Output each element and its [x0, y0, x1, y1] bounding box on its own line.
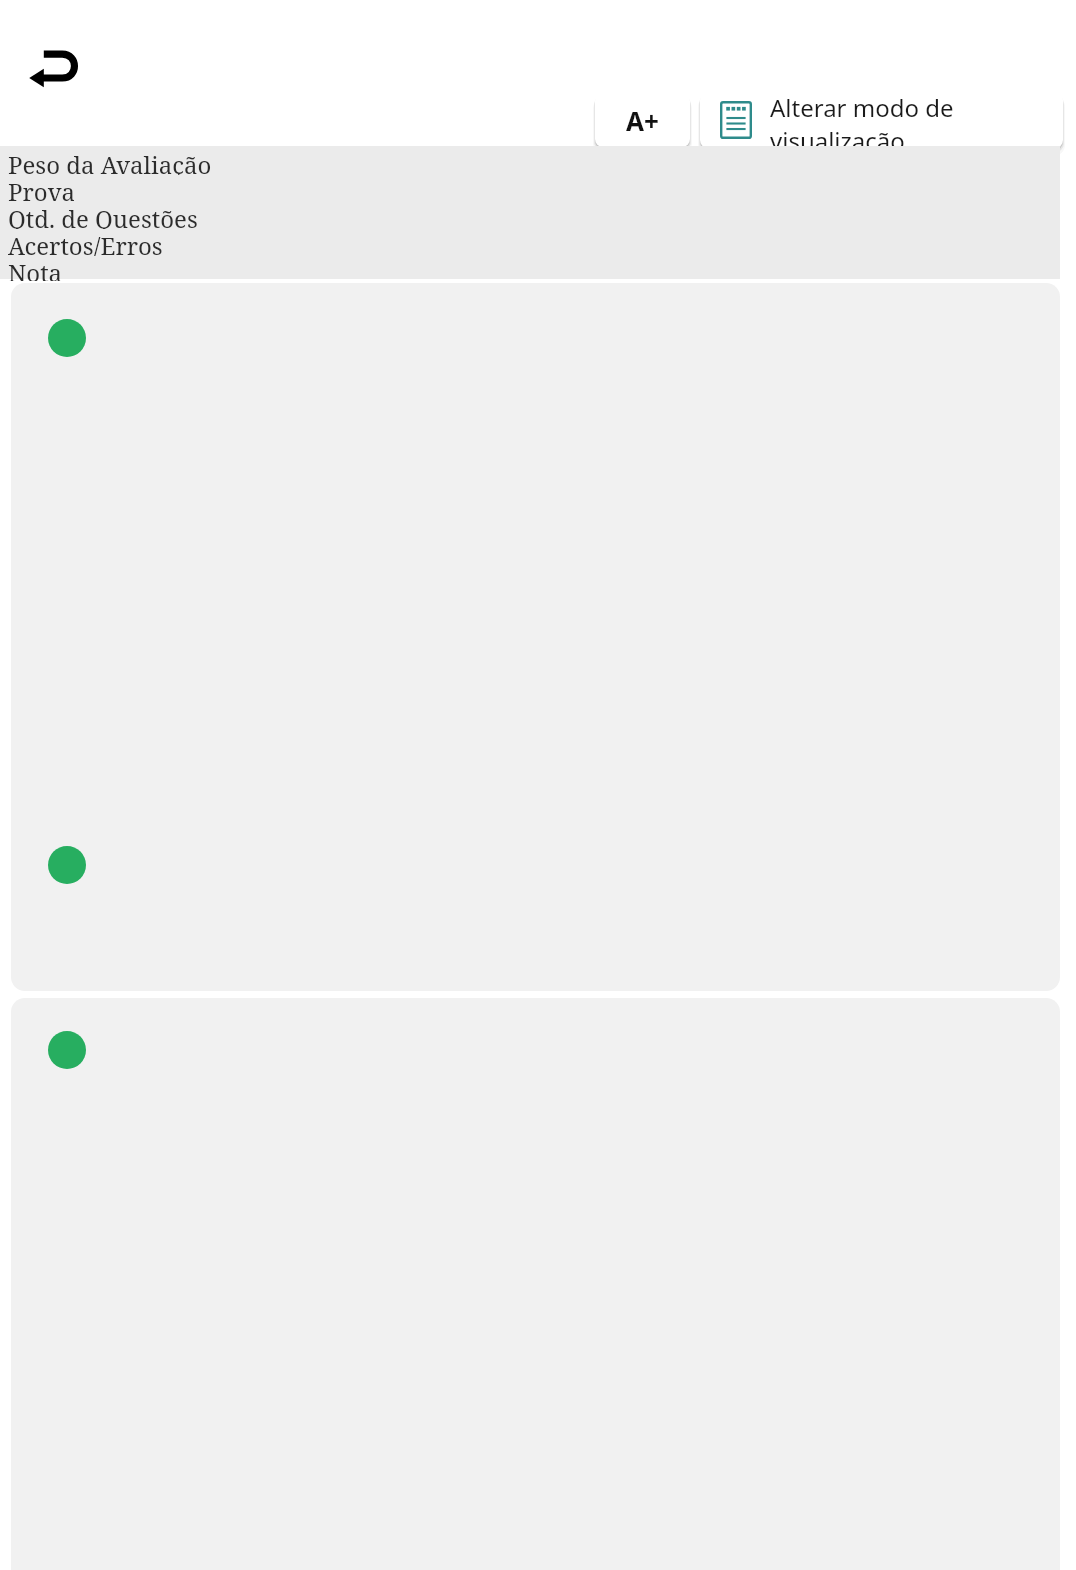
- staticText: A+: [626, 103, 659, 138]
- button[interactable]: Voltar: [18, 36, 92, 98]
- button[interactable]: [11, 998, 1060, 1570]
- staticText: Alterar modo de visualização: [770, 91, 1047, 149]
- button[interactable]: A+: [595, 93, 690, 147]
- staticText: Acertos/Erros: [8, 229, 163, 256]
- staticText: Prova: [8, 175, 76, 202]
- staticText: Peso da Avaliação: [8, 148, 212, 175]
- staticText: Nota: [8, 256, 63, 281]
- staticText: Qtd. de Questões: [8, 202, 198, 229]
- button[interactable]: [11, 283, 1060, 991]
- button[interactable]: Alterar modo de visualização: [700, 91, 1063, 149]
